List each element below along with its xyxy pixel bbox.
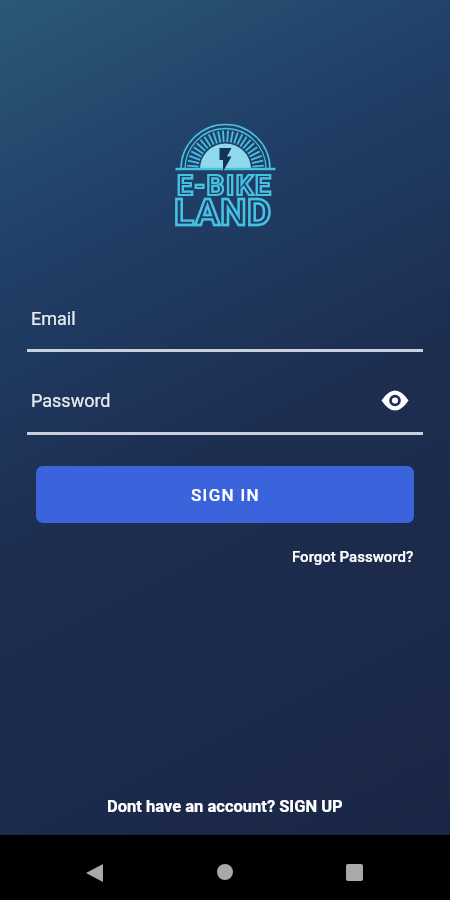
button[interactable]: Dont have an account? SIGN UP <box>107 797 343 816</box>
button[interactable] <box>346 864 363 881</box>
button[interactable]: SIGN IN <box>36 466 414 523</box>
staticText: E-BIKE <box>177 169 273 202</box>
staticText: Forgot Password? <box>292 548 414 566</box>
staticText: Email <box>31 308 76 329</box>
button[interactable] <box>86 864 103 882</box>
staticText: Dont have an account? SIGN UP <box>107 797 343 816</box>
staticText: Password <box>31 390 111 411</box>
staticText: LAND <box>174 191 272 234</box>
button[interactable] <box>217 864 233 880</box>
staticText: SIGN IN <box>191 485 260 505</box>
button[interactable]: Forgot Password? <box>292 548 414 566</box>
button[interactable] <box>381 389 409 412</box>
